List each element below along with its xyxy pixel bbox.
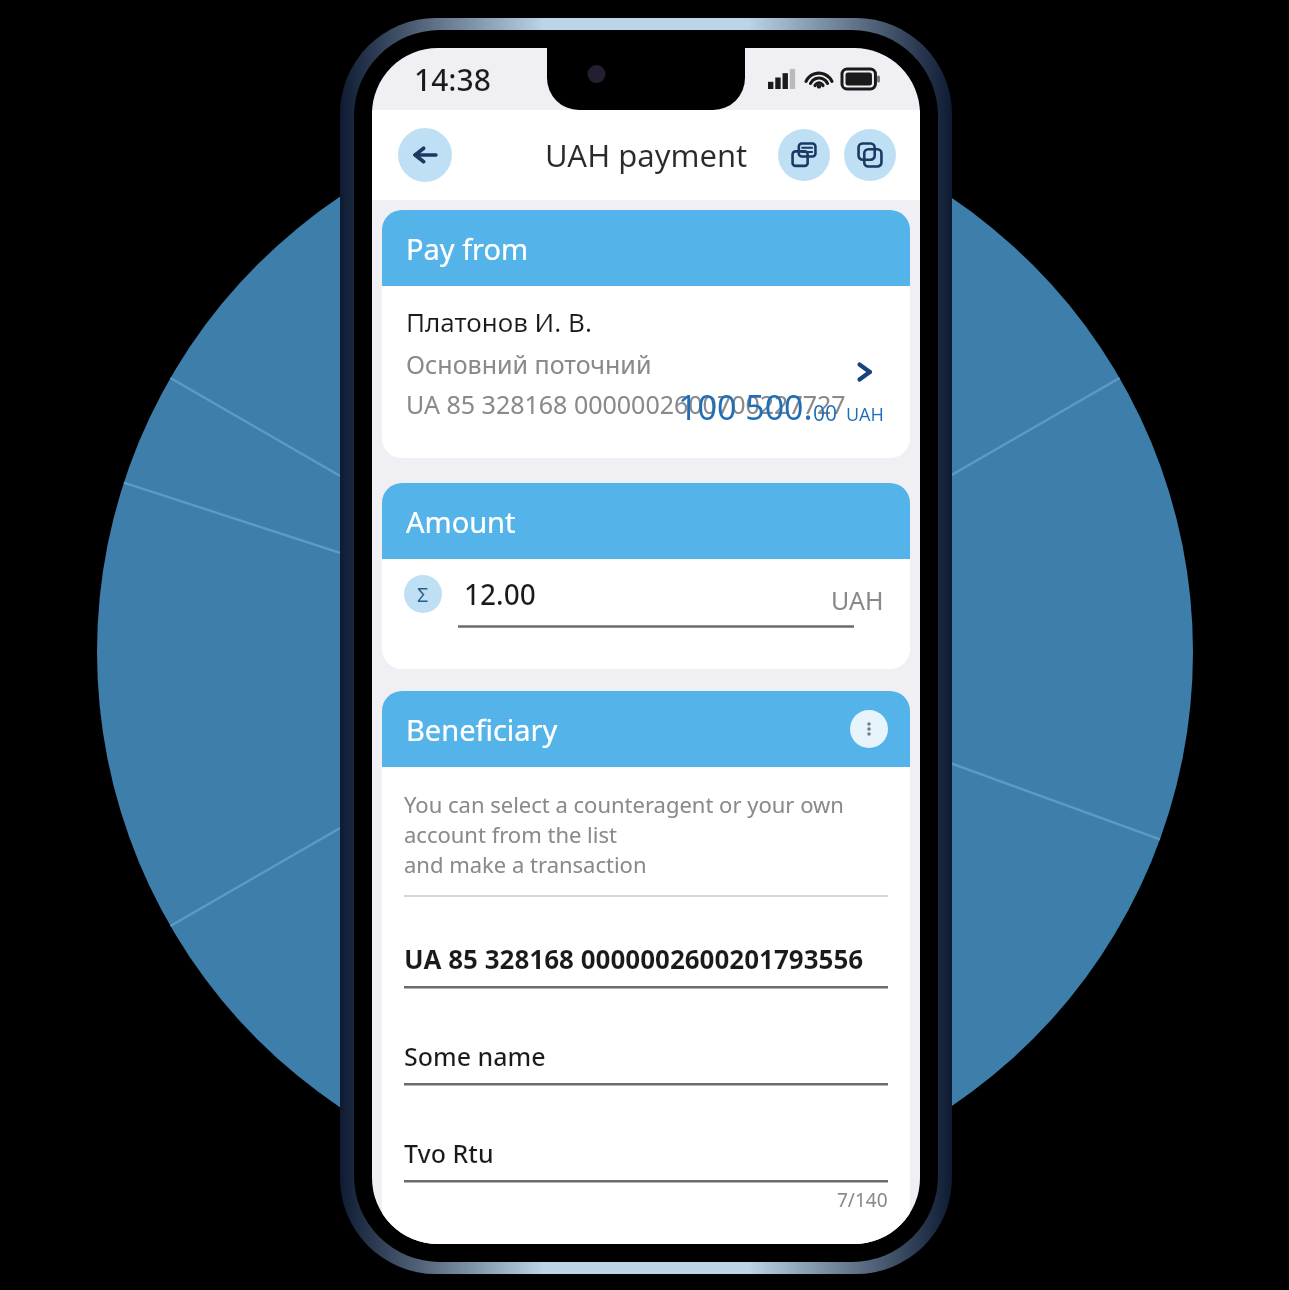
staticText: Tvo Rtu <box>404 1136 494 1170</box>
button[interactable]: Copy <box>844 129 896 181</box>
staticText: Основний поточний <box>406 347 652 381</box>
staticText: Σ <box>417 581 429 608</box>
button[interactable]: Back <box>398 128 452 182</box>
button[interactable]: Amount <box>382 483 910 559</box>
button[interactable]: Σ <box>382 559 910 669</box>
button[interactable]: Templates <box>778 129 830 181</box>
button[interactable]: More options <box>850 710 888 748</box>
staticText: 100 500. <box>678 384 813 430</box>
staticText: Some name <box>404 1039 546 1073</box>
staticText: Beneficiary <box>406 710 558 749</box>
staticText: UAH <box>846 402 884 427</box>
staticText: 00 <box>813 399 838 428</box>
staticText: Amount <box>406 502 516 541</box>
staticText: UA 85 328168 0000002600700227727 <box>406 387 846 421</box>
staticText: You can select a counteragent or your ow… <box>404 789 888 879</box>
staticText: 12.00 <box>464 575 536 613</box>
staticText: UAH <box>831 583 884 617</box>
button[interactable]: Beneficiary <box>382 691 910 767</box>
staticText: UAH payment <box>545 134 748 176</box>
staticText: Pay from <box>406 229 529 268</box>
staticText: Платонов И. В. <box>406 304 592 339</box>
button[interactable]: Pay from <box>382 210 910 286</box>
staticText: UA 85 328168 0000002600201793556 <box>404 941 864 976</box>
staticText: 7/140 <box>837 1187 888 1213</box>
staticText: 14:38 <box>414 59 491 100</box>
button[interactable]: Платонов И. В. <box>382 286 910 458</box>
